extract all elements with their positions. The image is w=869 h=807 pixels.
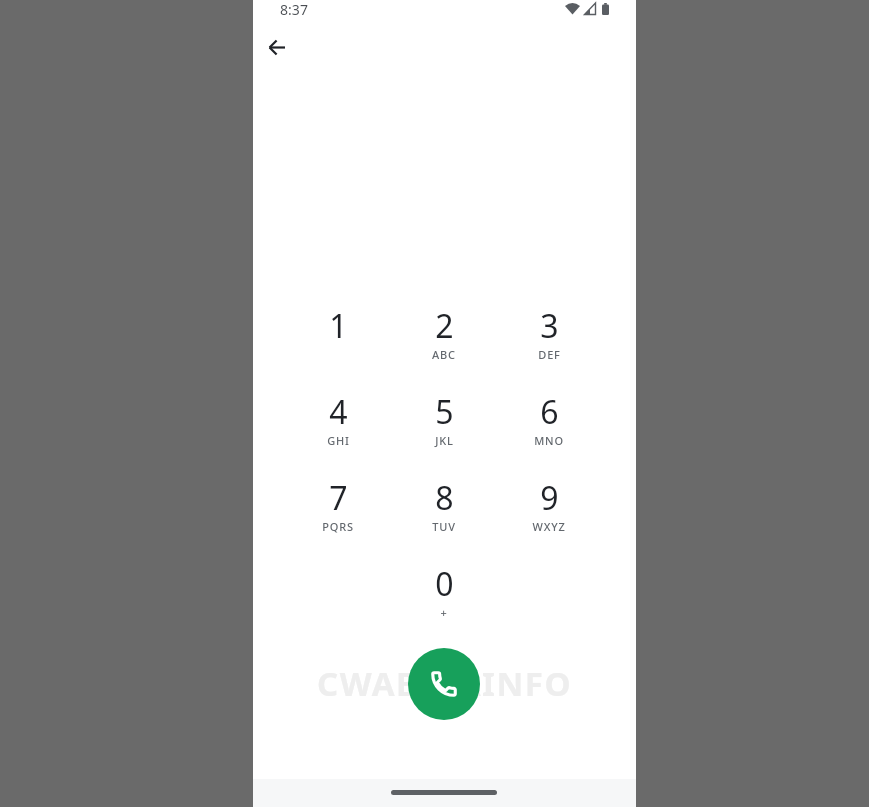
- button[interactable]: 8: [391, 474, 497, 536]
- button[interactable]: 6: [496, 388, 602, 450]
- staticText: ABC: [432, 347, 456, 362]
- staticText: 1: [329, 304, 348, 348]
- staticText: +: [440, 605, 448, 620]
- staticText: 9: [540, 476, 559, 520]
- button[interactable]: [261, 31, 293, 63]
- staticText: DEF: [538, 347, 561, 362]
- button[interactable]: 7: [285, 474, 391, 536]
- staticText: 8:37: [280, 0, 308, 18]
- staticText: TUV: [432, 519, 456, 534]
- button[interactable]: 0: [391, 560, 497, 622]
- staticText: 7: [329, 476, 348, 520]
- staticText: 2: [435, 304, 454, 348]
- button[interactable]: 3: [496, 302, 602, 364]
- staticText: 3: [540, 304, 559, 348]
- staticText: 4: [329, 390, 348, 434]
- staticText: WXYZ: [532, 519, 566, 534]
- staticText: PQRS: [322, 519, 354, 534]
- button[interactable]: 4: [285, 388, 391, 450]
- staticText: 5: [435, 390, 454, 434]
- staticText: 8: [435, 476, 454, 520]
- staticText: GHI: [327, 433, 350, 448]
- staticText: 0: [435, 562, 454, 606]
- staticText: JKL: [435, 433, 454, 448]
- button[interactable]: 5: [391, 388, 497, 450]
- button[interactable]: 9: [496, 474, 602, 536]
- staticText: MNO: [534, 433, 564, 448]
- staticText: CWABETAINFO: [317, 661, 572, 706]
- button[interactable]: 1: [285, 302, 391, 364]
- button[interactable]: 2: [391, 302, 497, 364]
- button[interactable]: [408, 648, 480, 720]
- staticText: 6: [540, 390, 559, 434]
